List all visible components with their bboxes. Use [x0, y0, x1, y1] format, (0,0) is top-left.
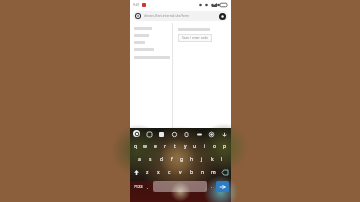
button[interactable]: v	[175, 166, 186, 179]
button[interactable]: r	[160, 140, 170, 153]
button[interactable]: d	[156, 153, 167, 166]
staticText: i	[204, 143, 206, 150]
staticText: j	[201, 156, 203, 163]
staticText: d	[160, 156, 164, 163]
button[interactable]: q	[131, 140, 140, 153]
staticText: x	[157, 169, 160, 176]
button[interactable]: Backspace	[219, 166, 230, 179]
button[interactable]: Emoji	[170, 130, 178, 138]
button[interactable]: b	[186, 166, 197, 179]
staticText: p	[223, 143, 227, 150]
staticText: e	[154, 143, 157, 150]
button[interactable]: More options	[220, 130, 228, 138]
button[interactable]: p	[220, 140, 230, 153]
button[interactable]: Account	[219, 13, 226, 20]
button[interactable]: o	[210, 140, 220, 153]
button[interactable]: Clipboard	[182, 130, 190, 138]
staticText: c	[168, 169, 171, 176]
staticText: m	[211, 169, 216, 176]
button[interactable]: s	[145, 153, 156, 166]
staticText: drivers.fleet.internal.site/form	[144, 14, 190, 18]
button[interactable]: w	[140, 140, 150, 153]
staticText: s	[149, 156, 152, 163]
button[interactable]: a	[134, 153, 145, 166]
staticText: .	[211, 184, 213, 189]
button[interactable]: ?123	[132, 181, 144, 192]
staticText: y	[184, 143, 187, 150]
staticText: u	[193, 143, 197, 150]
button[interactable]: i	[200, 140, 210, 153]
button[interactable]: t	[170, 140, 180, 153]
staticText: n	[201, 169, 205, 176]
staticText: o	[213, 143, 217, 150]
button[interactable]: Enter	[216, 181, 229, 192]
button[interactable]: c	[164, 166, 175, 179]
staticText: f	[171, 156, 173, 163]
staticText: l	[221, 156, 223, 163]
button[interactable]: l	[217, 153, 227, 166]
staticText: k	[211, 156, 214, 163]
staticText: q	[134, 143, 138, 150]
staticText: 9:41	[133, 3, 140, 7]
button[interactable]: y	[180, 140, 190, 153]
staticText: ,	[147, 184, 149, 189]
button[interactable]: Settings	[207, 130, 215, 138]
button[interactable]: g	[177, 153, 187, 166]
button[interactable]: .	[208, 181, 216, 192]
button[interactable]: GIF	[157, 130, 165, 138]
staticText: h	[190, 156, 194, 163]
button[interactable]: n	[197, 166, 208, 179]
staticText: t	[174, 143, 176, 150]
staticText: w	[143, 143, 147, 150]
staticText: r	[164, 143, 167, 150]
button[interactable]: Space	[153, 181, 207, 192]
button[interactable]: h	[187, 153, 197, 166]
button[interactable]: Stickers	[145, 130, 153, 138]
button[interactable]: Theme	[195, 130, 203, 138]
button[interactable]: Shift	[131, 166, 142, 179]
staticText: ?123	[134, 184, 143, 189]
staticText: g	[180, 156, 184, 163]
button[interactable]: m	[208, 166, 219, 179]
button[interactable]: drivers.fleet.internal.site/form	[133, 11, 228, 21]
button[interactable]: k	[207, 153, 217, 166]
button[interactable]: Search	[133, 130, 140, 137]
staticText: a	[138, 156, 141, 163]
button[interactable]: ,	[144, 181, 152, 192]
staticText: z	[146, 169, 149, 176]
staticText: Scan / enter code	[182, 36, 208, 40]
button[interactable]: f	[167, 153, 177, 166]
staticText: v	[179, 169, 182, 176]
button[interactable]: e	[150, 140, 160, 153]
button[interactable]: z	[142, 166, 153, 179]
button[interactable]: x	[153, 166, 164, 179]
button[interactable]: j	[197, 153, 207, 166]
button[interactable]: u	[190, 140, 200, 153]
staticText: b	[190, 169, 194, 176]
button[interactable]: Scan / enter code	[178, 34, 212, 42]
